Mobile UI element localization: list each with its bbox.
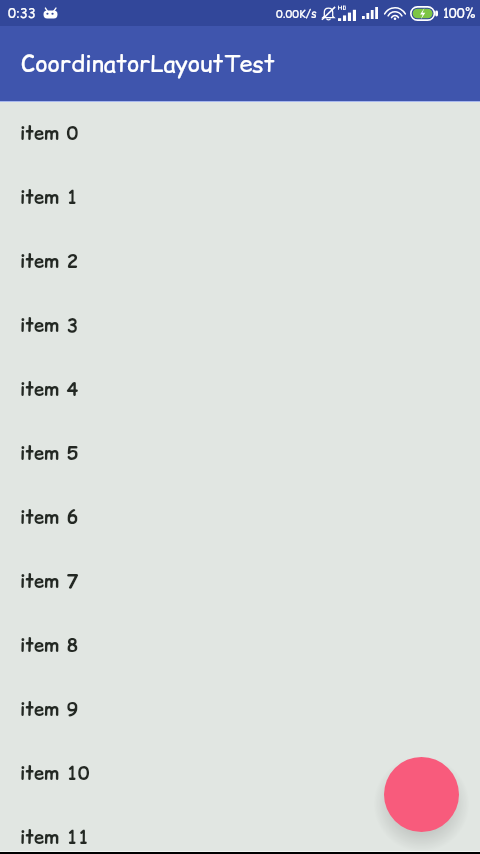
button[interactable]: item 2 (0, 229, 480, 293)
staticText: item 5 (20, 440, 78, 466)
button[interactable]: item 9 (0, 677, 480, 741)
staticText: 0:33 (8, 4, 36, 22)
staticText: item 7 (20, 568, 78, 594)
button[interactable]: item 11 (0, 805, 480, 854)
staticText: item 11 (20, 824, 90, 850)
button[interactable]: Add (384, 757, 459, 832)
button[interactable]: item 7 (0, 549, 480, 613)
button[interactable]: item 10 (0, 741, 480, 805)
button[interactable]: item 3 (0, 293, 480, 357)
staticText: 100% (443, 4, 476, 22)
staticText: item 3 (20, 312, 78, 338)
button[interactable]: item 5 (0, 421, 480, 485)
staticText: item 1 (20, 184, 78, 210)
staticText: 0.00K/s (276, 6, 317, 21)
staticText: item 8 (20, 632, 78, 658)
staticText: item 6 (20, 504, 78, 530)
button[interactable]: item 0 (0, 101, 480, 165)
button[interactable]: item 8 (0, 613, 480, 677)
staticText: item 4 (20, 376, 78, 402)
staticText: item 10 (20, 760, 90, 786)
button[interactable]: item 1 (0, 165, 480, 229)
staticText: CoordinatorLayoutTest (21, 47, 275, 80)
staticText: item 9 (20, 696, 78, 722)
button[interactable]: item 6 (0, 485, 480, 549)
staticText: item 2 (20, 248, 78, 274)
staticText: item 0 (20, 120, 78, 146)
button[interactable]: item 4 (0, 357, 480, 421)
